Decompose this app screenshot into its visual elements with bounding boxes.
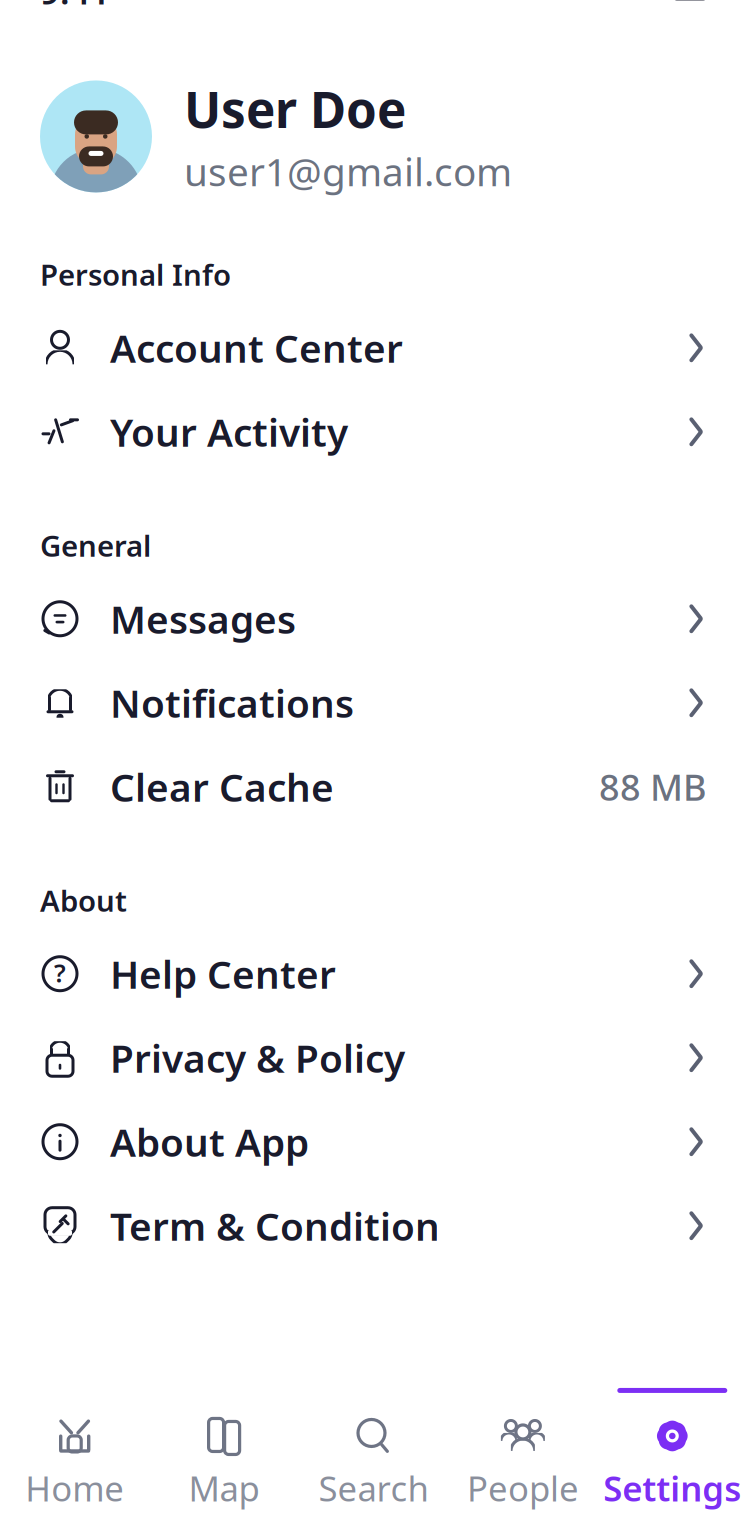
staticText: About [40, 881, 127, 920]
button[interactable]: Term & Condition [0, 1184, 747, 1268]
staticText: user1@gmail.com [184, 145, 512, 197]
staticText: Personal Info [40, 255, 231, 294]
button[interactable]: Search [299, 1388, 448, 1511]
staticText: Messages [110, 593, 296, 644]
staticText: Help Center [110, 948, 336, 999]
staticText: People [467, 1465, 579, 1511]
staticText: Your Activity [110, 406, 348, 457]
staticText: Clear Cache [110, 761, 334, 812]
button[interactable]: Notifications [0, 661, 747, 745]
staticText: About App [110, 1116, 309, 1167]
staticText: ? [54, 956, 66, 989]
button[interactable]: Privacy & Policy [0, 1016, 747, 1100]
staticText: Map [189, 1465, 260, 1511]
staticText: Account Center [110, 322, 403, 373]
button[interactable]: Settings [598, 1388, 747, 1511]
button[interactable]: Home [0, 1388, 149, 1511]
button[interactable]: Account Center [0, 306, 747, 390]
staticText: 88 MB [599, 763, 707, 811]
staticText: Search [318, 1465, 428, 1511]
button[interactable]: Your Activity [0, 390, 747, 474]
button[interactable]: Messages [0, 577, 747, 661]
staticText: Settings [603, 1465, 741, 1511]
staticText: Privacy & Policy [110, 1032, 405, 1083]
staticText: Term & Condition [110, 1200, 440, 1251]
button[interactable]: About App [0, 1100, 747, 1184]
button[interactable]: Clear Cache [0, 745, 747, 829]
staticText: 9:41 [40, 0, 110, 14]
button[interactable]: User Doe [0, 76, 747, 197]
staticText: Home [25, 1465, 124, 1511]
staticText: General [40, 526, 151, 565]
button[interactable]: ? [0, 932, 747, 1016]
button[interactable]: People [448, 1388, 598, 1511]
staticText: User Doe [184, 76, 406, 141]
staticText: Notifications [110, 677, 354, 728]
button[interactable]: Map [149, 1388, 299, 1511]
